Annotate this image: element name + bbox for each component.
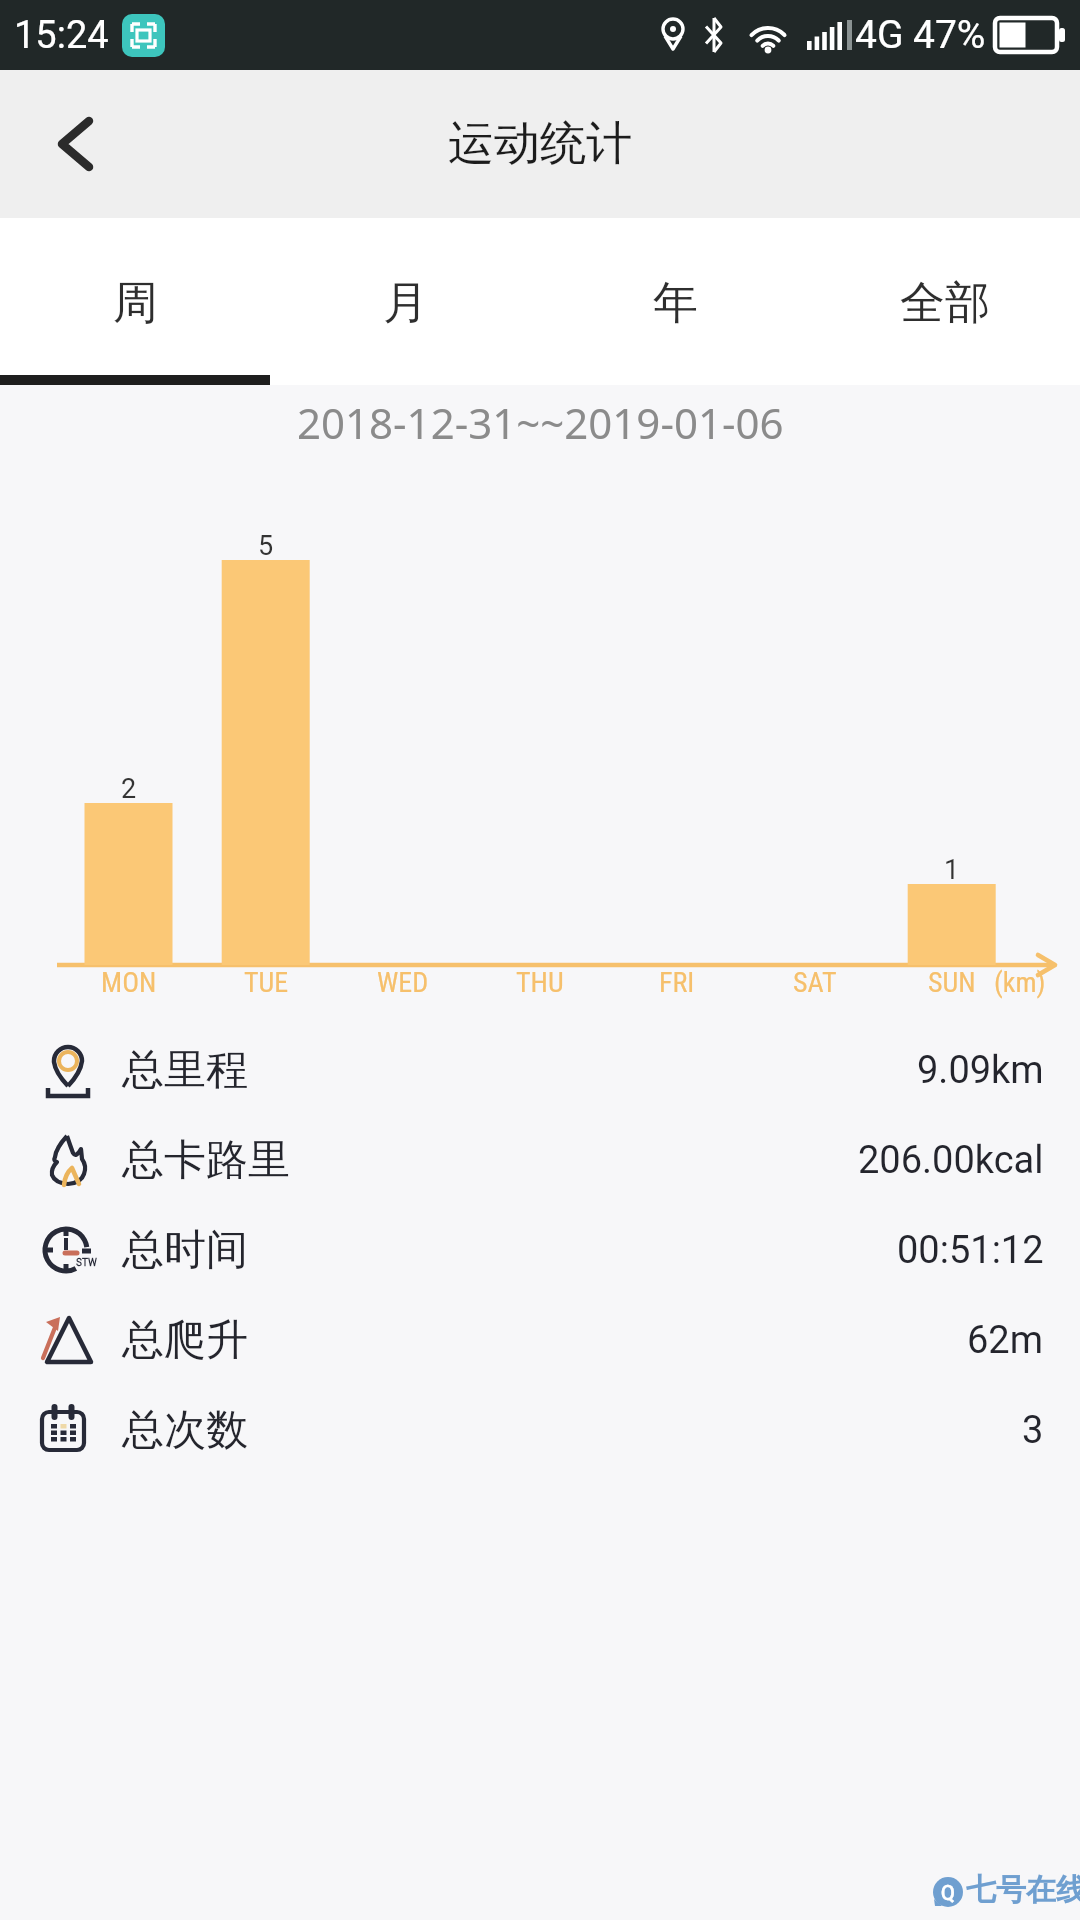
staticText: TUE [244,966,289,999]
staticText: 4G [855,12,904,58]
staticText: 七号在线 [966,1871,1080,1909]
staticText: (km) [994,966,1046,999]
staticText: 206.00kcal [858,1138,1044,1183]
button[interactable]: 周 [0,218,270,375]
button[interactable]: 年 [540,218,810,375]
staticText: MON [101,966,157,999]
staticText: 年 [653,275,698,332]
staticText: 5 [258,530,274,562]
button[interactable]: 总卡路里 [0,1115,1080,1205]
staticText: THU [516,966,564,999]
staticText: 周 [113,275,158,332]
staticText: STW [76,1257,97,1269]
staticText: Q [941,1881,955,1904]
staticText: 总里程 [122,1044,248,1097]
staticText: 62m [967,1318,1044,1363]
staticText: SAT [793,966,837,999]
staticText: 3 [1022,1408,1044,1453]
button[interactable]: 月 [270,218,540,375]
button[interactable]: STW [0,1205,1080,1295]
button[interactable]: 全部 [810,218,1080,375]
staticText: WED [377,966,429,999]
button[interactable] [40,109,110,179]
button[interactable]: 总爬升 [0,1295,1080,1385]
staticText: 15:24 [14,13,109,58]
staticText: 00:51:12 [897,1228,1044,1273]
staticText: SUN [928,966,976,999]
staticText: 2018-12-31~~2019-01-06 [297,394,784,451]
staticText: 总爬升 [122,1314,248,1367]
staticText: 1 [944,854,960,886]
staticText: 运动统计 [448,115,632,173]
staticText: 月 [383,275,428,332]
button[interactable]: 总里程 [0,1025,1080,1115]
staticText: 全部 [900,275,990,332]
staticText: 47% [913,12,986,58]
button[interactable]: 总次数 [0,1385,1080,1475]
staticText: 总卡路里 [122,1134,290,1187]
staticText: 总时间 [122,1224,248,1277]
staticText: 总次数 [122,1404,248,1457]
staticText: FRI [659,966,695,999]
staticText: 2 [121,773,137,805]
staticText: 9.09km [917,1048,1044,1093]
